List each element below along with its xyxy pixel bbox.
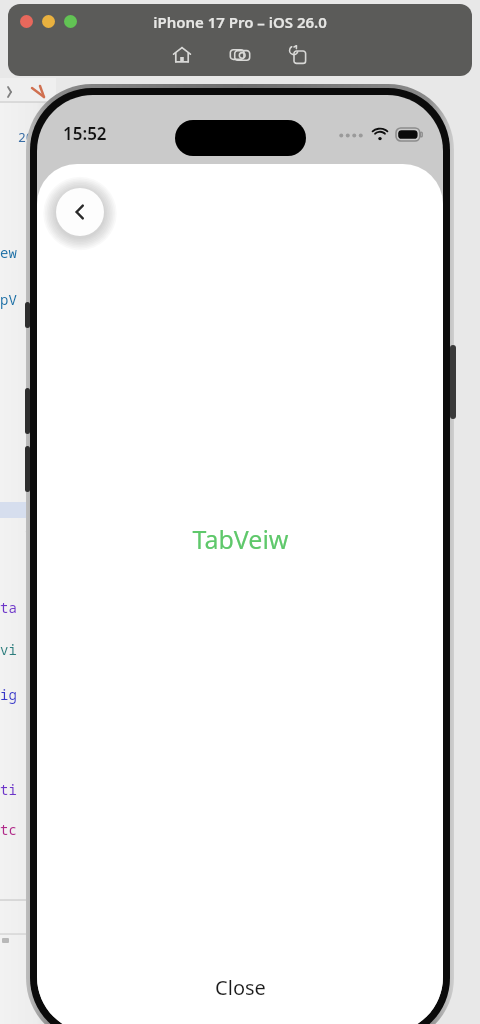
staticText: pV [0, 290, 17, 309]
button[interactable]: Rotate [283, 40, 313, 70]
staticText: · [26, 712, 35, 731]
button[interactable]: Side button [450, 345, 456, 419]
button[interactable]: Minimise window [42, 15, 55, 28]
button[interactable]: Screenshot [225, 40, 255, 70]
staticText: ig [0, 685, 17, 704]
button[interactable]: Zoom window [64, 15, 77, 28]
staticText: tc [0, 820, 17, 839]
staticText: ta [0, 598, 17, 617]
button[interactable]: Home [167, 40, 197, 70]
staticText: { [24, 520, 33, 539]
button[interactable]: Volume down [25, 446, 30, 492]
staticText: vi [0, 640, 17, 659]
button[interactable]: Volume up [25, 388, 30, 434]
button[interactable]: Close [215, 974, 266, 1001]
button[interactable]: Action button [25, 302, 30, 328]
staticText: Close [215, 974, 266, 1001]
staticText: 15:52 [63, 122, 107, 145]
button[interactable]: Close window [20, 15, 33, 28]
staticText: iPhone 17 Pro – iOS 26.0 [153, 12, 327, 32]
staticText: ew [0, 243, 17, 262]
staticText: TabVeiw [192, 522, 289, 556]
staticText: ti [0, 780, 17, 799]
button[interactable]: Back [56, 188, 104, 236]
staticText: 20 [18, 128, 34, 146]
